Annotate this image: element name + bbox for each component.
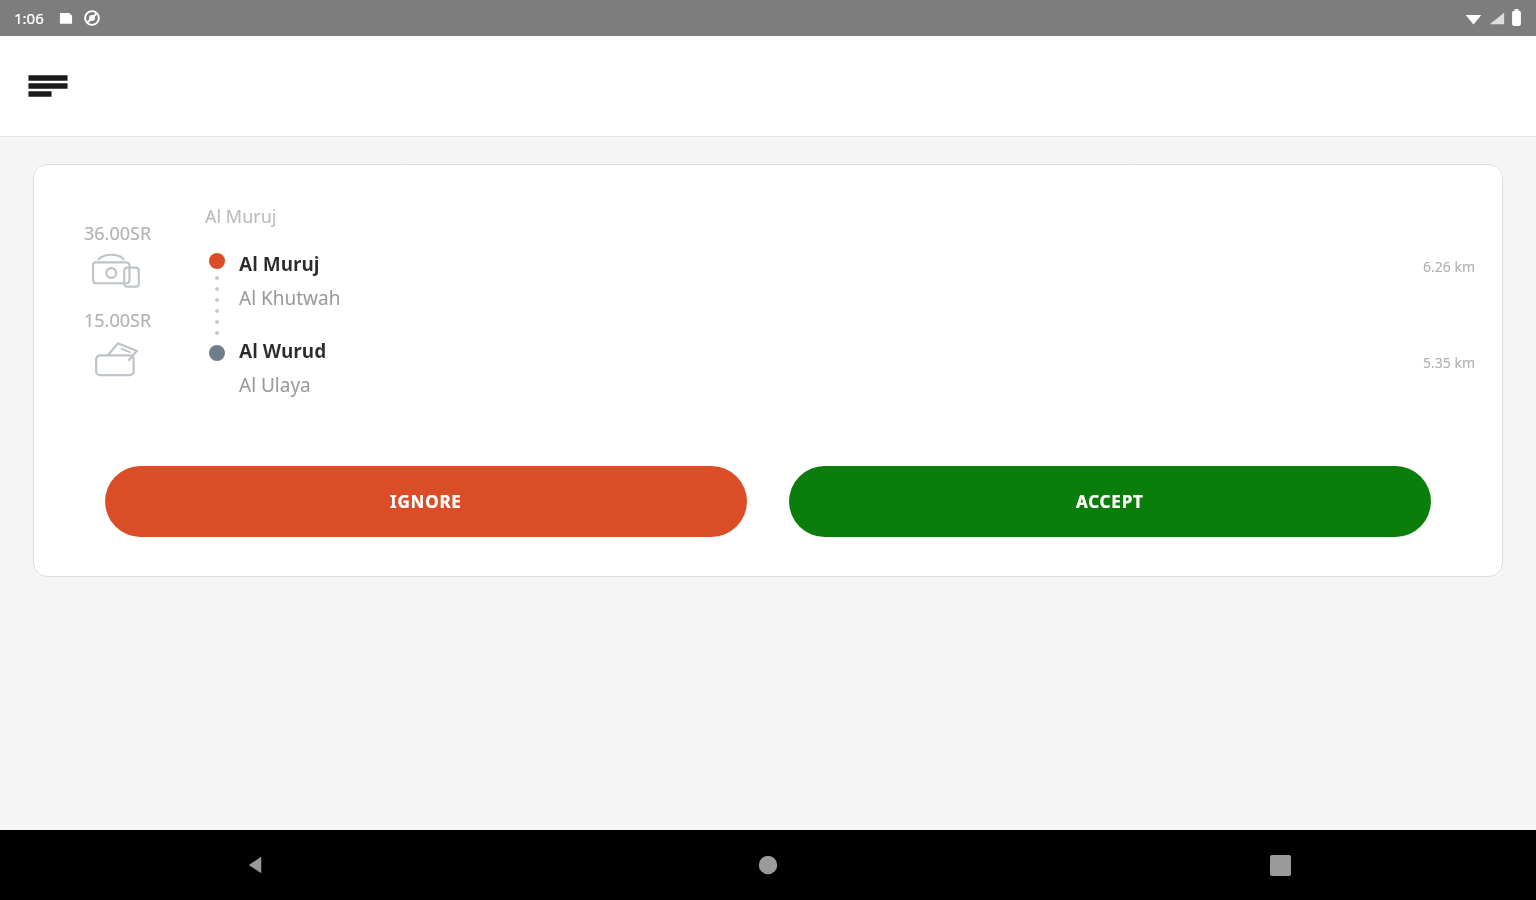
- staticText: 36.00SR: [84, 221, 152, 246]
- staticText: 6.26 km: [1423, 257, 1475, 276]
- staticText: ACCEPT: [1076, 490, 1144, 513]
- button[interactable]: Recent apps: [1024, 830, 1536, 900]
- staticText: 15.00SR: [84, 308, 152, 333]
- staticText: IGNORE: [390, 490, 462, 513]
- button[interactable]: Back: [0, 830, 512, 900]
- staticText: Al Muruj: [239, 251, 320, 277]
- staticText: 1:06: [14, 8, 44, 28]
- staticText: 5.35 km: [1423, 353, 1475, 372]
- staticText: Al Ulaya: [239, 372, 311, 398]
- staticText: Al Khutwah: [239, 285, 341, 311]
- button[interactable]: Open navigation menu: [22, 60, 74, 112]
- button[interactable]: IGNORE: [105, 466, 747, 537]
- button[interactable]: Home: [512, 830, 1024, 900]
- staticText: Al Wurud: [239, 338, 327, 364]
- staticText: Al Muruj: [205, 204, 277, 229]
- button[interactable]: ACCEPT: [789, 466, 1431, 537]
